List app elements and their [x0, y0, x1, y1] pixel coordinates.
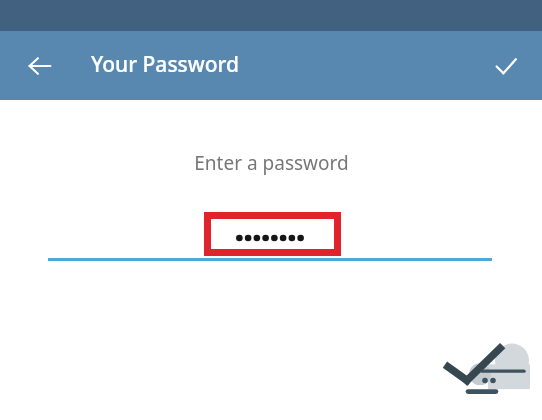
- staticText: Your Password: [91, 50, 240, 79]
- button[interactable]: [48, 218, 492, 258]
- button[interactable]: Done: [480, 40, 532, 92]
- staticText: Enter a password: [194, 150, 349, 176]
- button[interactable]: Back: [14, 40, 66, 92]
